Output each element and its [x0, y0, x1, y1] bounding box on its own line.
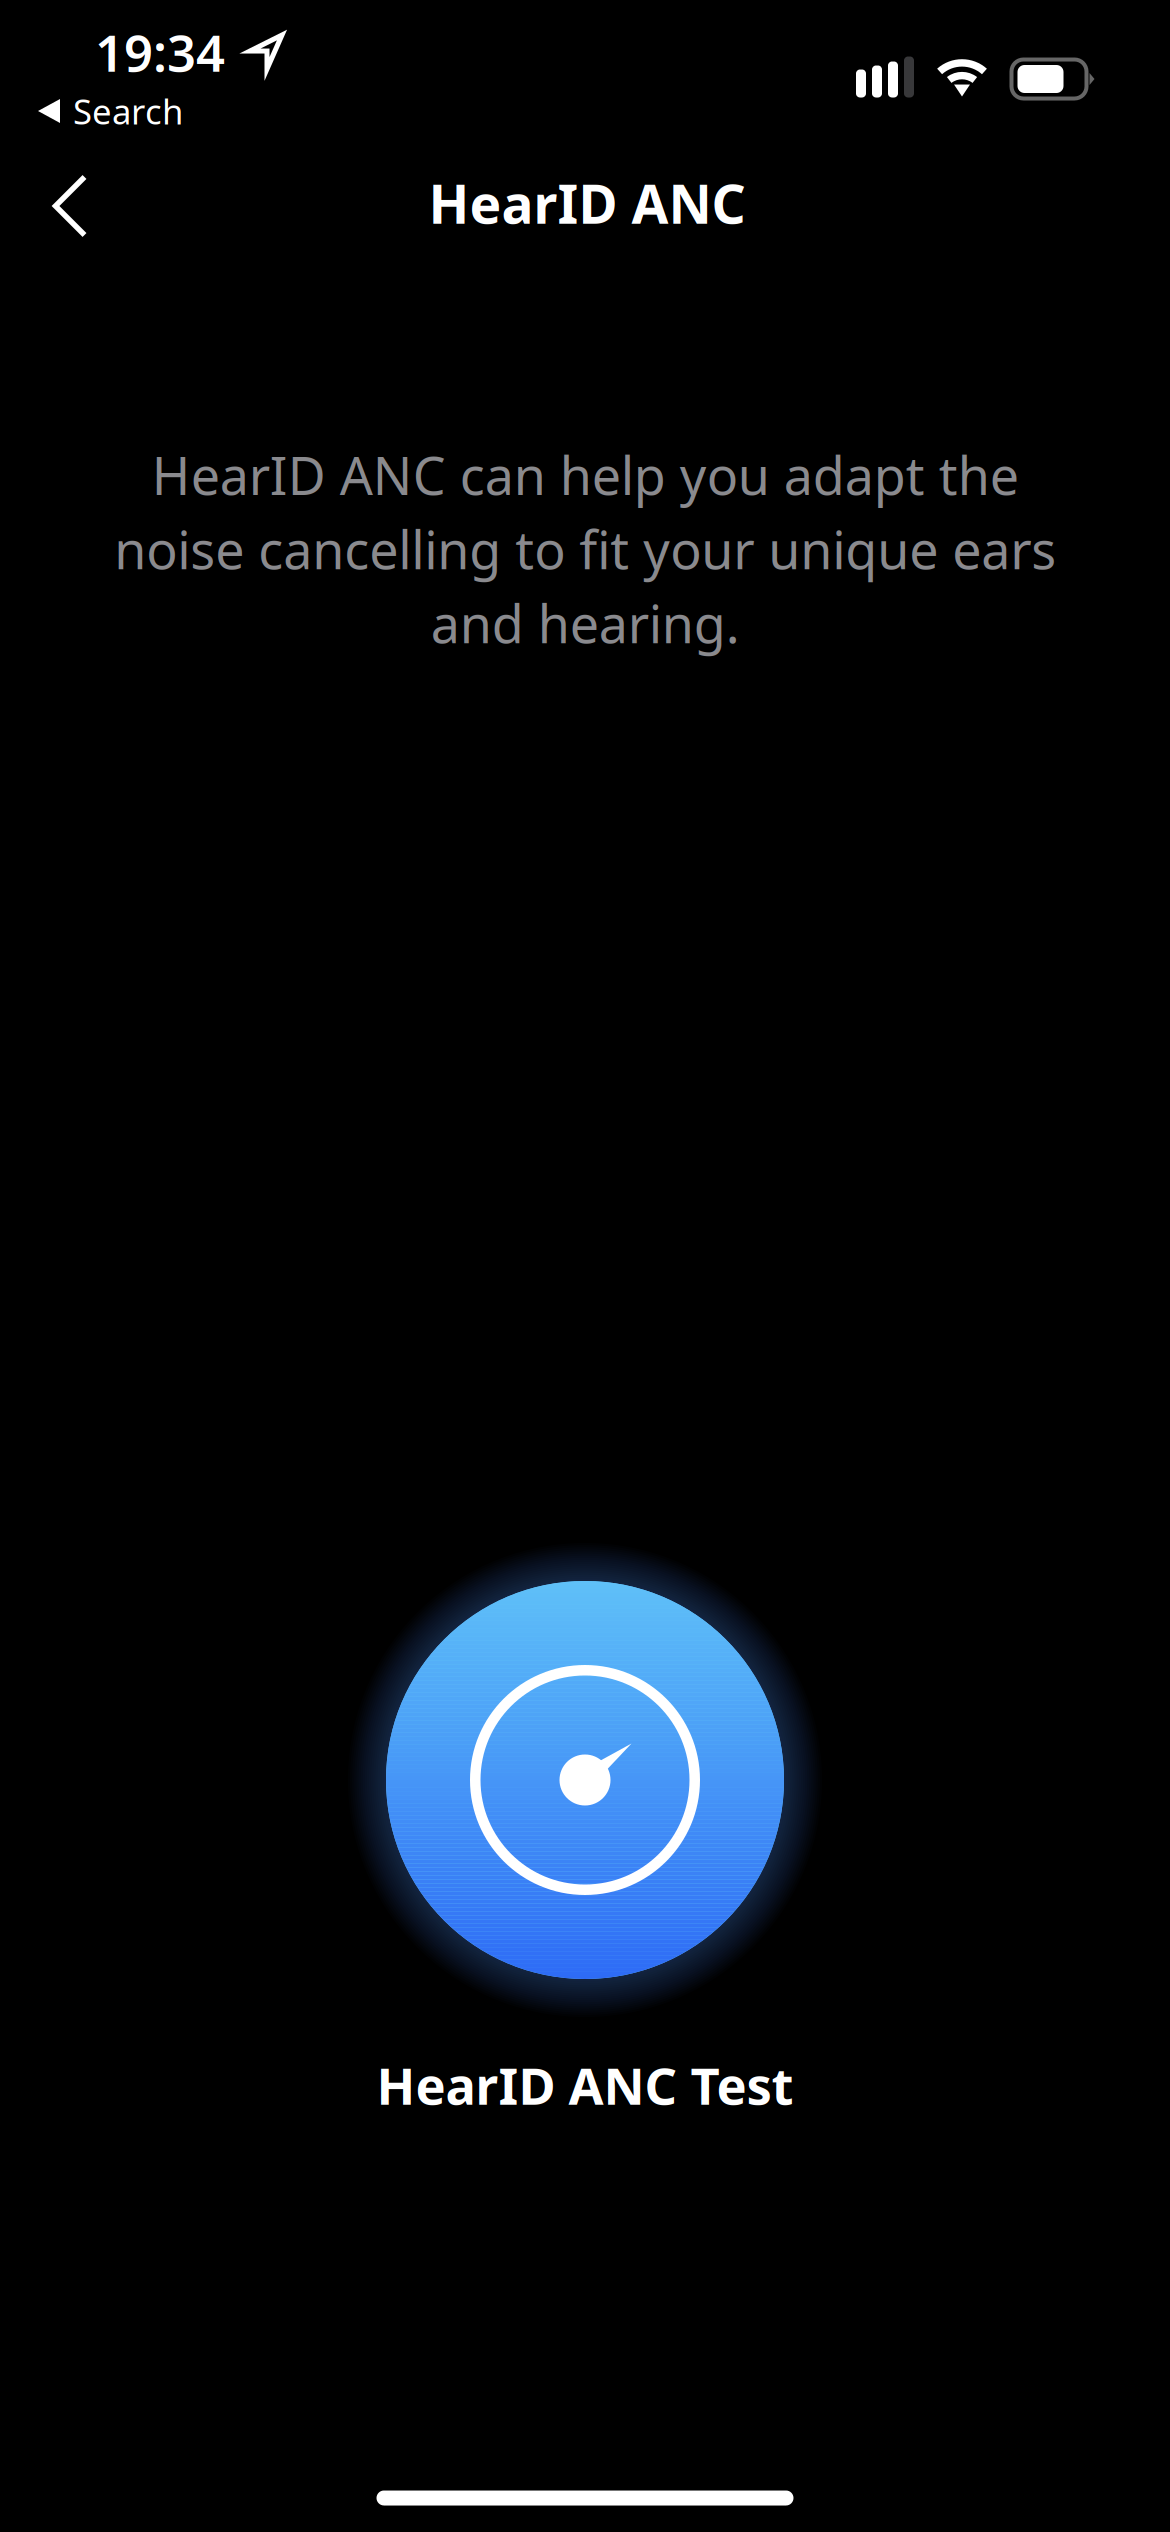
button[interactable]: HearID ANC Test — [235, 1549, 935, 2159]
button[interactable]: Back — [14, 150, 126, 262]
staticText: HearID ANC Test — [376, 2051, 793, 2119]
staticText: Search — [73, 88, 183, 134]
staticText: 19:34 — [95, 18, 225, 86]
staticText: HearID ANC can help you adapt the noise … — [114, 440, 1056, 658]
staticText: HearID ANC — [428, 168, 745, 238]
button[interactable]: Search — [38, 86, 184, 136]
